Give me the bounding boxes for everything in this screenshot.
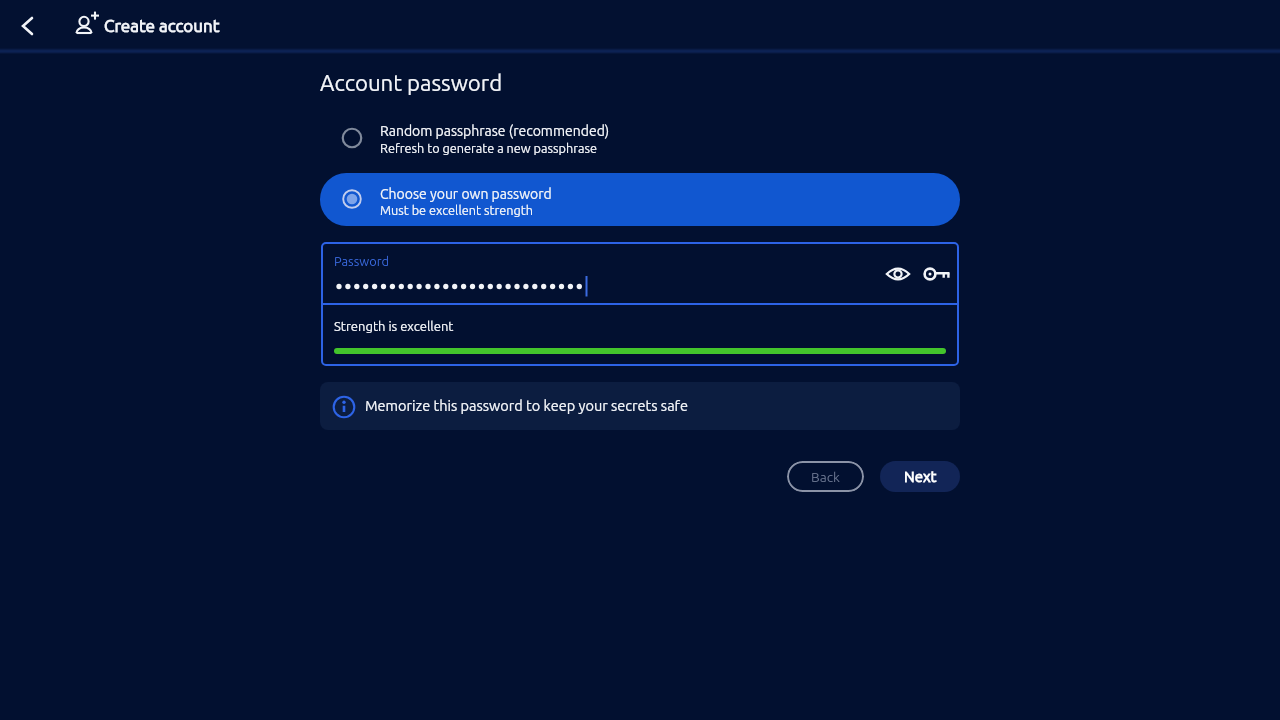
button[interactable]: Random passphrase (recommended) <box>320 114 960 162</box>
button[interactable]: Back <box>787 461 864 492</box>
button[interactable]: Choose your own password <box>320 173 960 226</box>
button[interactable] <box>875 251 921 297</box>
staticText: Random passphrase (recommended) <box>380 123 610 139</box>
staticText: Memorize this password to keep your secr… <box>365 397 689 413</box>
staticText: Account password <box>320 70 503 95</box>
staticText: Next <box>904 468 937 485</box>
staticText: Password <box>334 254 389 268</box>
staticText: Must be excellent strength <box>380 203 533 217</box>
staticText: Refresh to generate a new passphrase <box>380 141 598 155</box>
button[interactable] <box>8 6 48 46</box>
staticText: Choose your own password <box>380 186 552 202</box>
staticText: Strength is excellent <box>334 319 454 334</box>
staticText: Create account <box>104 16 220 35</box>
button[interactable] <box>914 251 960 297</box>
staticText: Back <box>811 469 841 484</box>
button[interactable]: Next <box>880 461 960 492</box>
